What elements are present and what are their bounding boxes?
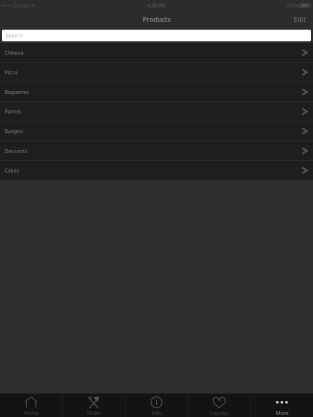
staticText: Burgers xyxy=(4,128,23,135)
staticText: Edit xyxy=(293,15,305,24)
button[interactable]: Cakes xyxy=(0,161,313,180)
button[interactable]: Desserts xyxy=(0,141,313,160)
staticText: 4:38 PM xyxy=(147,2,166,9)
staticText: Info xyxy=(151,409,161,416)
button[interactable]: Parmis xyxy=(0,102,313,121)
button[interactable]: Baguettes xyxy=(0,82,313,101)
button[interactable]: Edit xyxy=(288,12,310,26)
staticText: Loyalty xyxy=(210,409,228,416)
staticText: Desserts xyxy=(4,147,27,154)
button[interactable]: Burgers xyxy=(0,122,313,141)
button[interactable]: Search xyxy=(0,30,313,41)
staticText: 100% xyxy=(286,2,299,9)
staticText: Products xyxy=(142,15,170,24)
staticText: Home xyxy=(24,409,39,416)
staticText: Chinese xyxy=(4,49,23,56)
staticText: Carrier xyxy=(13,2,29,9)
staticText: Baguettes xyxy=(4,88,29,95)
button[interactable]: More xyxy=(251,393,313,417)
button[interactable]: Order xyxy=(63,393,125,417)
staticText: Cakes xyxy=(4,167,19,174)
staticText: More xyxy=(275,409,288,416)
staticText: Order xyxy=(87,409,101,416)
button[interactable]: Pizza xyxy=(0,63,313,82)
button[interactable]: Loyalty xyxy=(188,393,250,417)
staticText: Search xyxy=(5,32,22,39)
staticText: Parmis xyxy=(4,108,21,115)
button[interactable]: Info xyxy=(125,393,188,417)
button[interactable]: Home xyxy=(0,393,62,417)
button[interactable]: Chinese xyxy=(0,43,313,62)
staticText: Pizza xyxy=(4,69,17,76)
